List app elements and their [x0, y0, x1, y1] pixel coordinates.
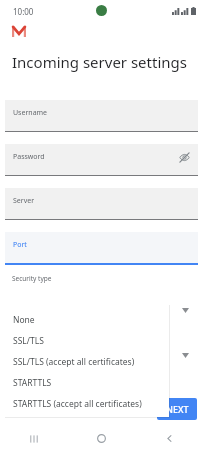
staticText: STARTTLS: [13, 377, 52, 389]
staticText: NEXT: [166, 403, 189, 415]
button[interactable]: Port: [5, 232, 198, 265]
staticText: Username: [13, 108, 48, 118]
button[interactable]: Username: [5, 100, 198, 133]
staticText: 10:00: [13, 6, 34, 17]
button[interactable]: SSL/TLS (accept all certificates): [5, 351, 169, 372]
button[interactable]: STARTTLS (accept all certificates): [5, 393, 169, 414]
button[interactable]: SSL/TLS: [5, 330, 169, 351]
staticText: Port: [13, 240, 27, 250]
staticText: Password: [13, 152, 45, 162]
staticText: SSL/TLS (accept all certificates): [13, 356, 135, 368]
button[interactable]: None: [5, 309, 169, 330]
button[interactable]: NEXT: [157, 398, 197, 420]
staticText: Incoming server settings: [12, 52, 187, 72]
button[interactable]: STARTTLS: [5, 372, 169, 393]
button[interactable]: Back: [135, 425, 203, 452]
staticText: Security type: [12, 274, 52, 283]
button[interactable]: Home: [67, 425, 135, 452]
button[interactable]: Server: [5, 188, 198, 221]
staticText: Server: [13, 196, 35, 206]
button[interactable]: Password: [5, 144, 198, 177]
other: Show password: [179, 152, 190, 163]
button[interactable]: Recent apps: [0, 425, 67, 452]
staticText: SSL/TLS: [13, 335, 44, 347]
staticText: None: [13, 314, 35, 326]
staticText: STARTTLS (accept all certificates): [13, 398, 142, 410]
